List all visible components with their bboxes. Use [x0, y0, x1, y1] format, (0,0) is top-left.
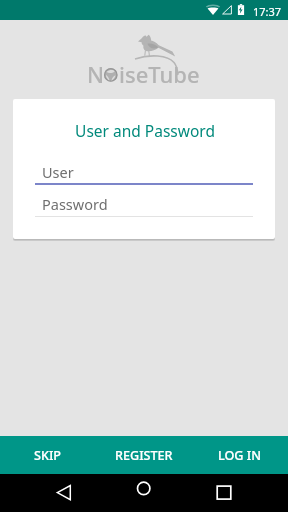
- staticText: REGISTER: [115, 447, 173, 464]
- button[interactable]: User: [35, 162, 253, 185]
- button[interactable]: Home: [130, 478, 158, 506]
- staticText: User and Password: [14, 120, 275, 141]
- button[interactable]: Back: [50, 478, 78, 506]
- staticText: SKIP: [34, 447, 62, 464]
- button[interactable]: SKIP: [0, 436, 96, 474]
- button[interactable]: Password: [35, 194, 253, 217]
- button[interactable]: REGISTER: [96, 436, 192, 474]
- button[interactable]: Recent apps: [210, 478, 238, 506]
- staticText: iseTube: [119, 59, 200, 89]
- staticText: N: [87, 59, 105, 89]
- staticText: Password: [42, 194, 108, 214]
- staticText: LOG IN: [218, 447, 262, 464]
- staticText: User: [42, 162, 74, 182]
- staticText: 17:37: [253, 4, 282, 19]
- button[interactable]: LOG IN: [192, 436, 288, 474]
